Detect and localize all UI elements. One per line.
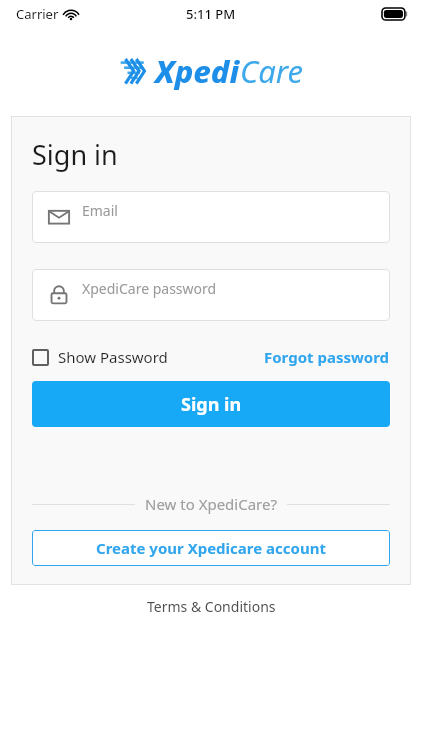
staticText: Email [82, 201, 118, 220]
staticText: Care [240, 50, 303, 92]
button[interactable]: Show Password [32, 347, 168, 367]
staticText: Carrier [16, 5, 59, 23]
staticText: Create your Xpedicare account [96, 538, 326, 558]
staticText: Xpedi [155, 50, 240, 92]
button[interactable]: Terms & Conditions [0, 597, 422, 616]
staticText: 5:11 PM [186, 5, 236, 23]
other: Email [48, 206, 70, 228]
staticText: Show Password [58, 347, 168, 367]
button[interactable]: Create your Xpedicare account [32, 530, 390, 566]
staticText: Forgot password [264, 347, 390, 367]
staticText: New to XpediCare? [145, 494, 277, 514]
button[interactable]: Sign in [32, 381, 390, 427]
staticText: XpediCare password [82, 279, 217, 298]
staticText: Sign in [32, 136, 118, 173]
button[interactable]: Email [32, 191, 390, 243]
staticText: Sign in [181, 392, 242, 417]
button[interactable]: Forgot password [264, 347, 390, 367]
button[interactable]: Password [32, 269, 390, 321]
staticText: Terms & Conditions [147, 597, 276, 616]
other: Password [48, 284, 70, 306]
